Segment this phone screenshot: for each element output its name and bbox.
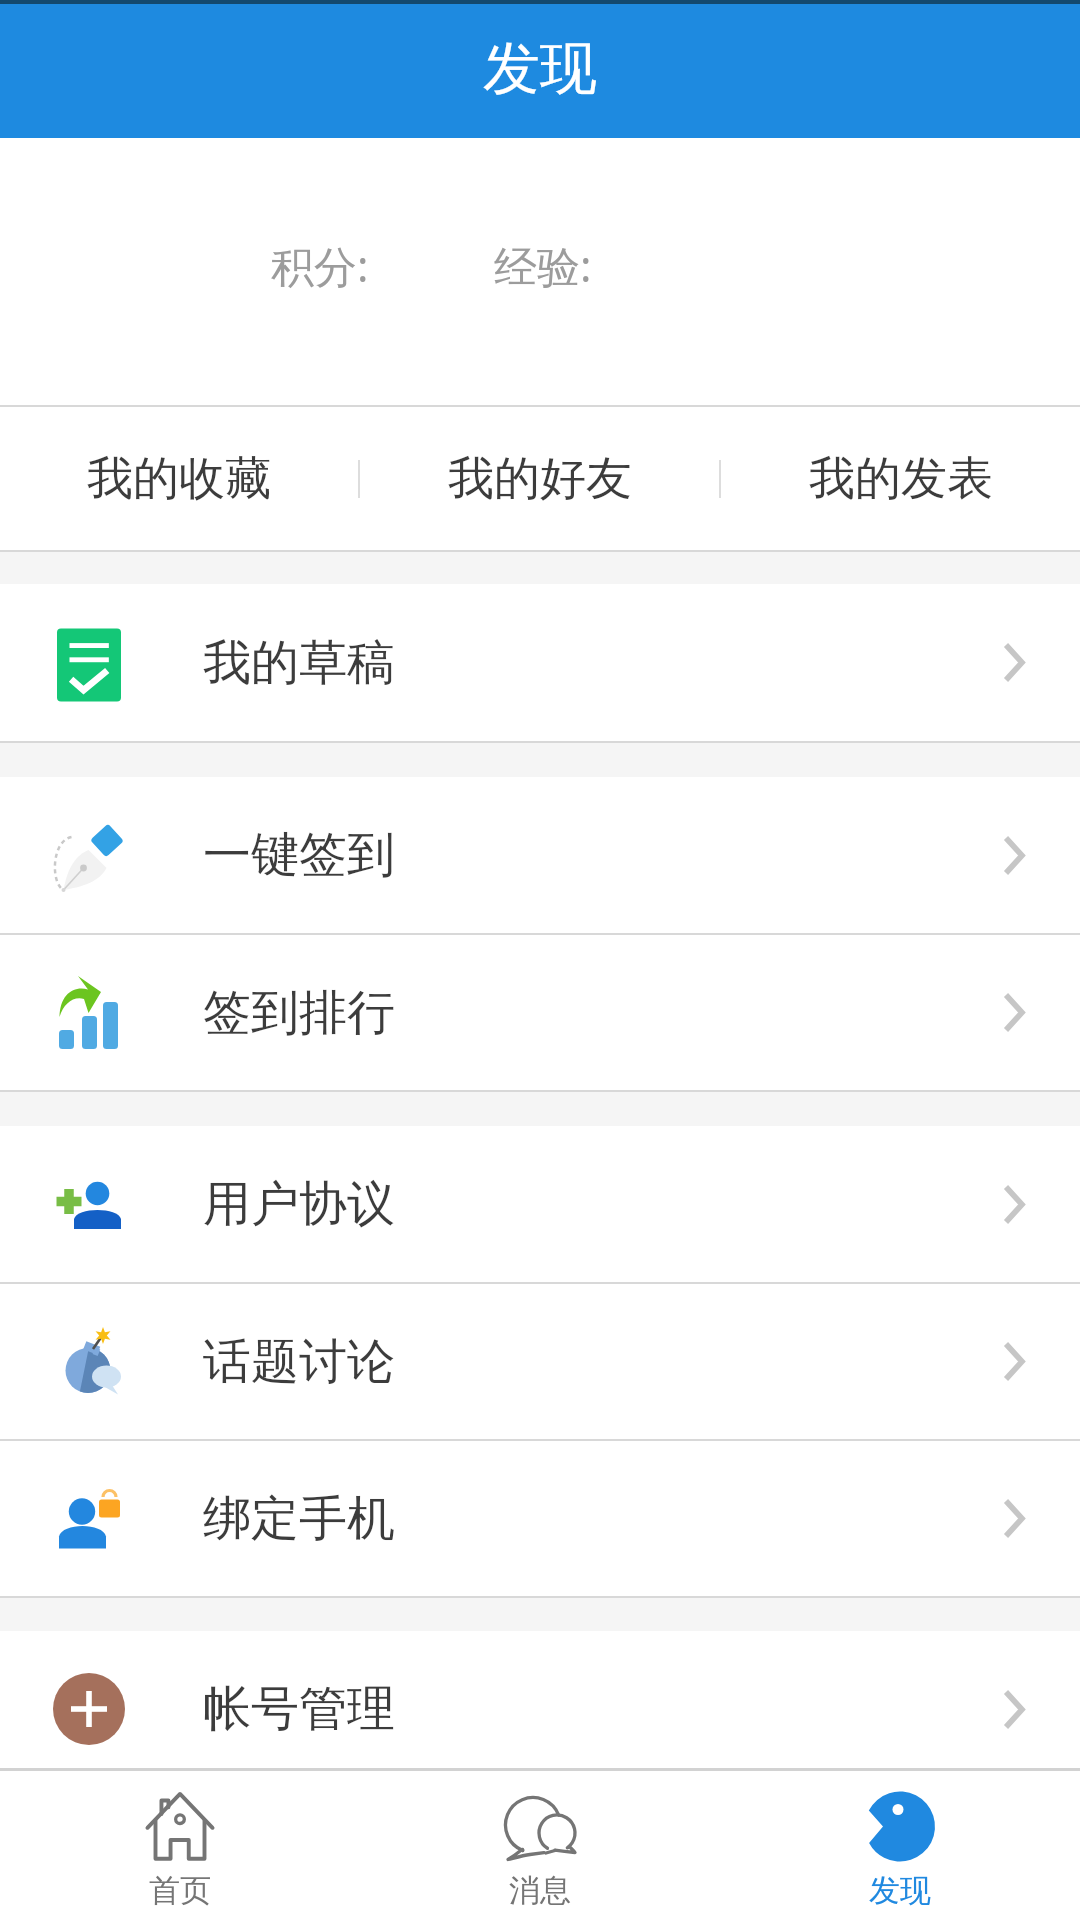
staticText: 我的发表 <box>809 450 993 508</box>
button[interactable]: 我的好友 <box>360 407 719 550</box>
button[interactable]: 我的发表 <box>721 407 1080 550</box>
button[interactable]: 签到排行 <box>0 935 1080 1090</box>
button[interactable]: 帐号管理 <box>0 1631 1080 1787</box>
staticText: 帐号管理 <box>203 1679 395 1739</box>
button[interactable]: 我的草稿 <box>0 584 1080 741</box>
staticText: 签到排行 <box>203 983 395 1043</box>
staticText: 首页 <box>149 1871 211 1910</box>
button[interactable]: 我的收藏 <box>0 407 358 550</box>
staticText: 我的好友 <box>448 450 632 508</box>
button[interactable]: 首页 <box>0 1771 360 1920</box>
staticText: 用户协议 <box>203 1174 395 1234</box>
staticText: 话题讨论 <box>203 1332 395 1392</box>
staticText: 发现 <box>869 1871 931 1910</box>
other: 发现 <box>865 1791 935 1862</box>
other: 消息 <box>505 1790 576 1862</box>
staticText: 发现 <box>483 33 597 105</box>
staticText: 经验: <box>494 236 592 295</box>
staticText: 积分: <box>271 236 369 295</box>
staticText: 一键签到 <box>203 825 395 885</box>
button[interactable]: 话题讨论 <box>0 1284 1080 1439</box>
button[interactable]: 一键签到 <box>0 777 1080 933</box>
button[interactable]: 消息 <box>360 1771 720 1920</box>
button[interactable]: 绑定手机 <box>0 1441 1080 1596</box>
button[interactable]: 用户协议 <box>0 1126 1080 1282</box>
staticText: 我的收藏 <box>87 450 271 508</box>
button[interactable]: 发现 <box>720 1771 1080 1920</box>
staticText: 消息 <box>509 1871 571 1910</box>
other: 首页 <box>145 1790 215 1862</box>
staticText: 绑定手机 <box>203 1489 395 1549</box>
staticText: 我的草稿 <box>203 633 395 693</box>
